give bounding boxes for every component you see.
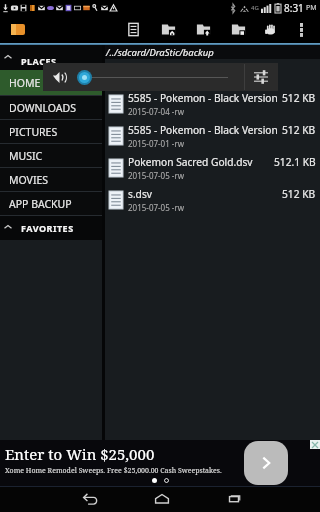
button[interactable]: FAVORITES xyxy=(0,216,102,240)
staticText: MUSIC xyxy=(9,149,43,163)
staticText: Pokemon Sacred Gold.dsv xyxy=(128,155,253,169)
button[interactable]: APP BACKUP xyxy=(0,192,102,216)
button[interactable]: Home folder xyxy=(154,15,182,43)
staticText: 512 KB xyxy=(282,123,316,137)
button[interactable]: PICTURES xyxy=(0,120,102,144)
staticText: APP BACKUP xyxy=(9,197,72,211)
button[interactable]: Next xyxy=(244,441,288,485)
button[interactable]: MOVIES xyxy=(0,168,102,192)
button[interactable]: MUSIC xyxy=(0,144,102,168)
button[interactable]: Equalizer xyxy=(254,70,268,84)
button[interactable]: Up folder xyxy=(189,15,217,43)
button[interactable]: 5585 - Pokemon - Black Version xyxy=(105,120,320,152)
button[interactable]: Pokemon Sacred Gold.dsv xyxy=(105,152,320,184)
button[interactable]: More options xyxy=(290,15,312,43)
staticText: 8:31 xyxy=(284,1,304,15)
staticText: PM xyxy=(306,3,317,13)
button[interactable]: /../sdcard/DraStic/backup xyxy=(105,45,320,59)
staticText: Enter to Win $25,000 xyxy=(5,444,155,464)
staticText: PICTURES xyxy=(9,125,58,139)
staticText: 2015-07-04 -rw xyxy=(128,106,185,117)
button[interactable]: New folder xyxy=(224,15,252,43)
staticText: 512.1 KB xyxy=(274,155,316,169)
staticText: Xome Home Remodel Sweeps. Free $25,000.0… xyxy=(5,466,222,476)
button[interactable]: Volume xyxy=(52,70,67,85)
button[interactable]: Recents xyxy=(214,486,254,512)
staticText: 4G xyxy=(251,4,259,12)
button[interactable]: Close ad xyxy=(310,440,320,449)
button[interactable]: Back xyxy=(70,486,110,512)
staticText: 5585 - Pokemon - Black Version xyxy=(128,91,278,105)
button[interactable]: Home xyxy=(142,486,182,512)
staticText: 5585 - Pokemon - Black Version xyxy=(128,123,278,137)
button[interactable]: DOWNLOADS xyxy=(0,96,102,120)
staticText: DOWNLOADS xyxy=(9,101,76,115)
staticText: FAVORITES xyxy=(21,222,74,234)
staticText: 2015-07-05 -rw xyxy=(128,170,185,181)
button[interactable]: Documents xyxy=(119,15,147,43)
staticText: s.dsv xyxy=(128,187,152,201)
button[interactable]: 5585 - Pokemon - Black Version xyxy=(105,88,320,120)
staticText: 512 KB xyxy=(282,187,316,201)
staticText: PLACES xyxy=(21,55,57,67)
button[interactable]: App xyxy=(9,19,29,39)
button[interactable]: Volume level xyxy=(77,70,92,85)
staticText: HOME xyxy=(9,76,41,90)
staticText: MOVIES xyxy=(9,173,49,187)
button[interactable]: HOME xyxy=(0,70,102,96)
staticText: 2015-07-01 -rw xyxy=(128,138,185,149)
button[interactable]: Gestures xyxy=(256,15,284,43)
staticText: /../sdcard/DraStic/backup xyxy=(106,46,214,59)
staticText: 2015-07-05 -rw xyxy=(128,202,185,213)
button[interactable]: s.dsv xyxy=(105,184,320,216)
staticText: 512 KB xyxy=(282,91,316,105)
button[interactable]: PLACES xyxy=(0,45,102,70)
